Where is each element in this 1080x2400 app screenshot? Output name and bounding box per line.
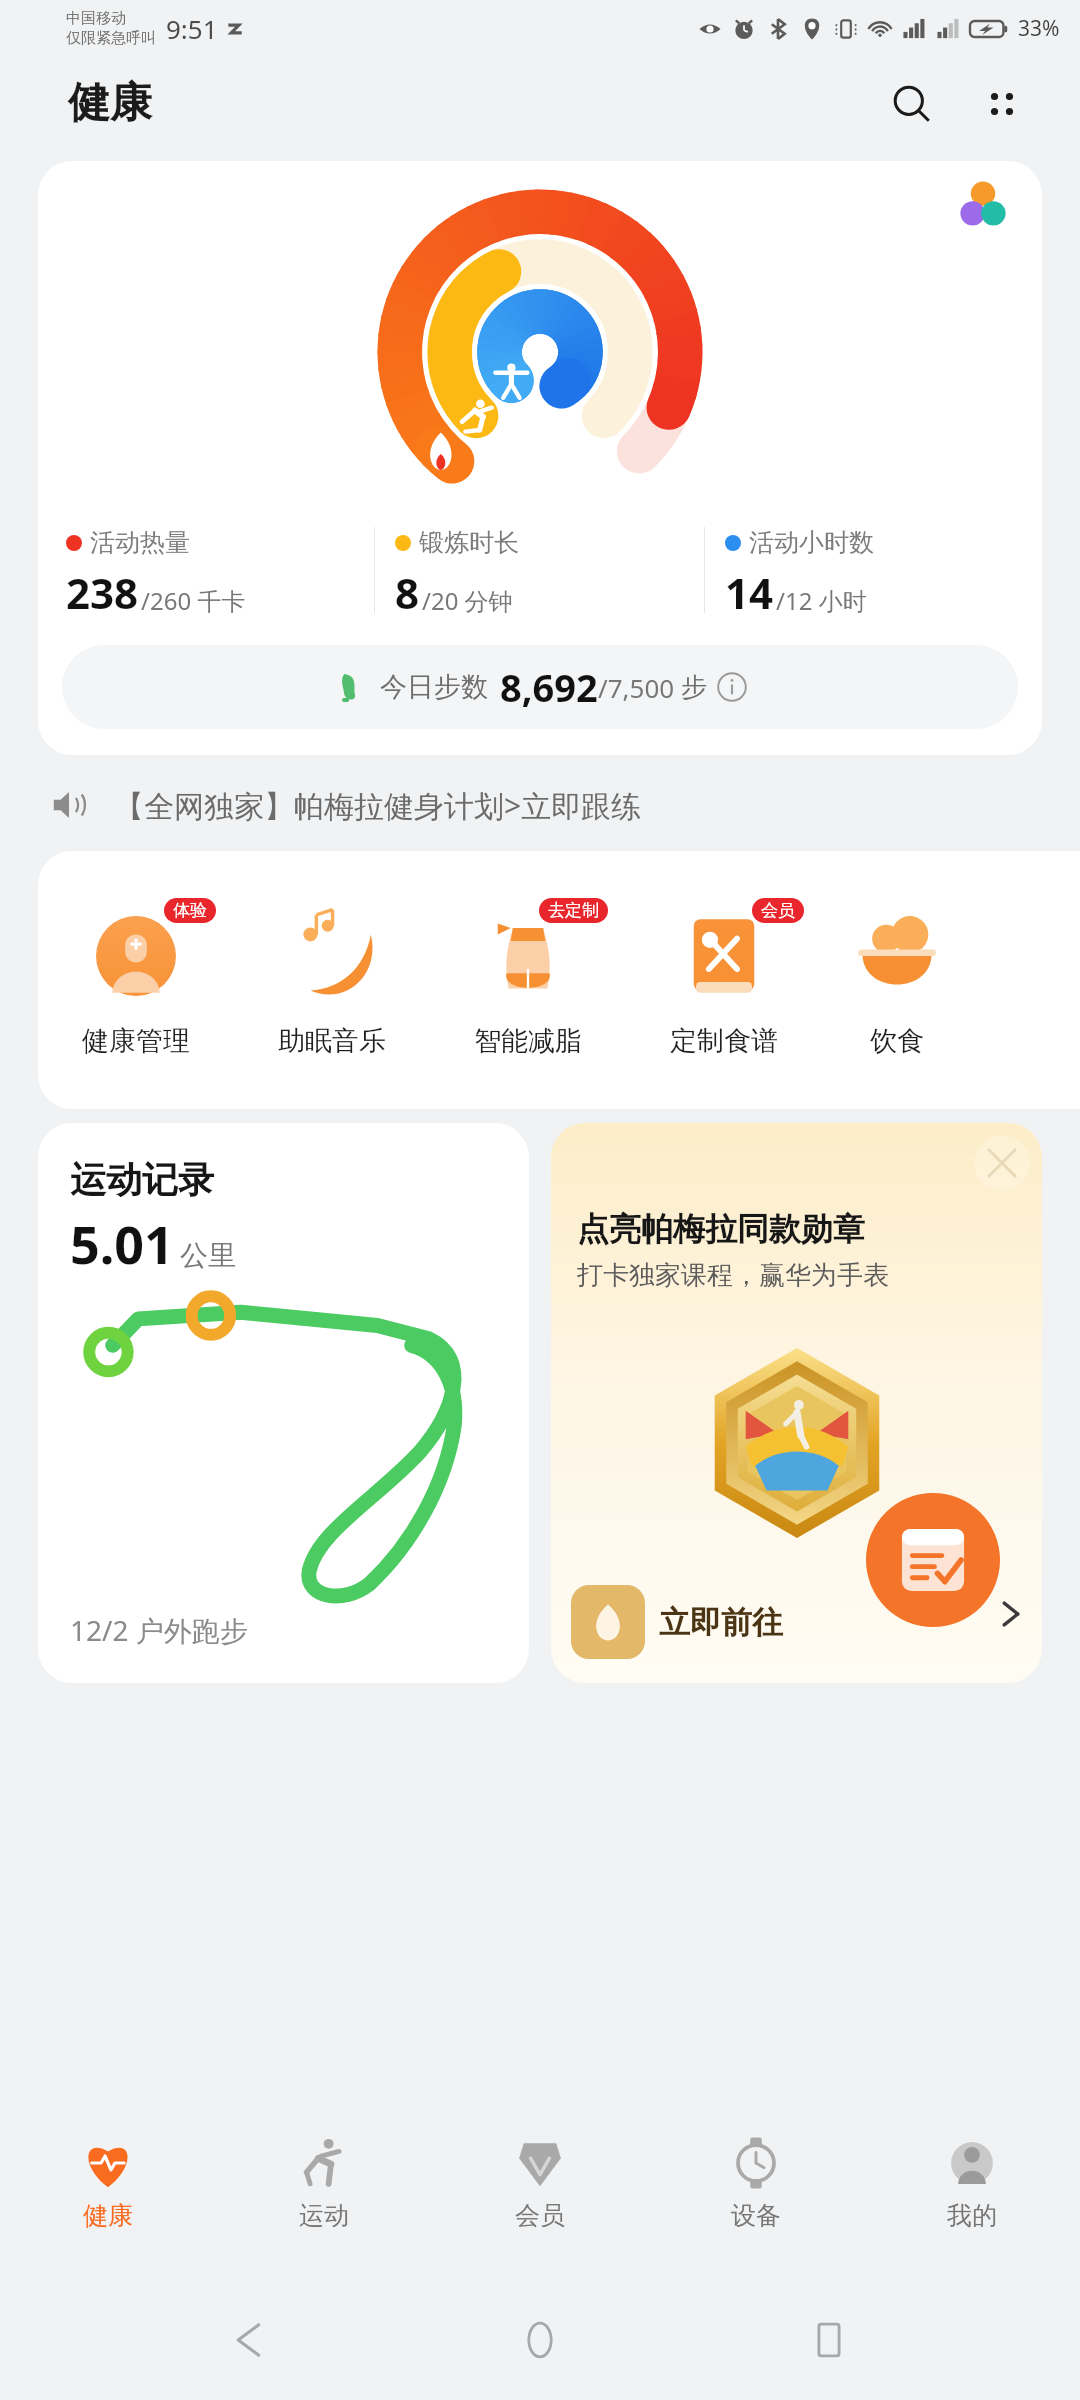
staticText: 我的 xyxy=(947,2200,997,2231)
button[interactable]: 我的 xyxy=(864,2120,1080,2280)
staticText: 中国移动 xyxy=(66,9,126,28)
staticText: 体验 xyxy=(173,900,207,921)
staticText: 公里 xyxy=(180,1238,236,1273)
button[interactable]: 活动热量 xyxy=(38,161,1042,755)
staticText: /260 千卡 xyxy=(141,584,246,617)
button[interactable]: 会员 xyxy=(432,2120,648,2280)
staticText: 活动热量 xyxy=(90,527,190,558)
button[interactable]: 饮食 xyxy=(822,851,972,1109)
button[interactable]: 健康 xyxy=(0,2120,216,2280)
staticText: 9:51 xyxy=(166,11,218,46)
staticText: 步 xyxy=(681,671,707,704)
button[interactable]: Home xyxy=(502,2302,578,2378)
button[interactable]: Check in xyxy=(866,1493,1000,1627)
staticText: 今日步数 xyxy=(380,670,488,704)
button[interactable]: 今日步数 xyxy=(62,645,1018,729)
staticText: /7,500 xyxy=(598,670,675,705)
staticText: /12 小时 xyxy=(776,584,867,617)
staticText: 5.01 xyxy=(70,1208,174,1279)
staticText: 运动记录 xyxy=(70,1157,214,1202)
button[interactable]: 体验 xyxy=(38,851,234,1109)
staticText: 助眠音乐 xyxy=(278,1024,386,1058)
staticText: 健康 xyxy=(83,2200,133,2231)
button[interactable]: 设备 xyxy=(648,2120,864,2280)
staticText: 8,692 xyxy=(500,661,598,713)
button[interactable]: 会员 xyxy=(626,851,822,1109)
button[interactable]: Profile xyxy=(924,161,1042,247)
staticText: 锻炼时长 xyxy=(419,527,519,558)
staticText: 活动小时数 xyxy=(749,527,874,558)
staticText: 健康 xyxy=(68,77,152,130)
staticText: 健康管理 xyxy=(82,1024,190,1058)
staticText: 饮食 xyxy=(870,1024,924,1058)
staticText: 去定制 xyxy=(548,900,599,921)
staticText: 12/2 户外跑步 xyxy=(70,1611,248,1649)
staticText: 会员 xyxy=(761,900,795,921)
staticText: 14 xyxy=(725,564,774,621)
staticText: 立即前往 xyxy=(659,1603,783,1642)
button[interactable]: 去定制 xyxy=(430,851,626,1109)
staticText: 仅限紧急呼叫 xyxy=(66,29,156,48)
button[interactable]: Search xyxy=(876,68,948,140)
staticText: 33% xyxy=(1018,14,1060,43)
button[interactable]: More options xyxy=(966,68,1038,140)
staticText: 238 xyxy=(66,564,139,621)
button[interactable]: 点亮帕梅拉同款勋章 xyxy=(551,1123,1042,1683)
staticText: 【全网独家】帕梅拉健身计划>立即跟练 xyxy=(114,785,642,826)
staticText: 会员 xyxy=(515,2200,565,2231)
button[interactable]: 运动 xyxy=(216,2120,432,2280)
button[interactable]: Back xyxy=(213,2302,289,2378)
button[interactable]: Close xyxy=(974,1135,1030,1191)
button[interactable]: 助眠音乐 xyxy=(234,851,430,1109)
button[interactable]: 【全网独家】帕梅拉健身计划>立即跟练 xyxy=(50,769,1030,841)
staticText: 设备 xyxy=(731,2200,781,2231)
staticText: 智能减脂 xyxy=(474,1024,582,1058)
staticText: 运动 xyxy=(299,2200,349,2231)
staticText: /20 分钟 xyxy=(422,584,513,617)
staticText: 打卡独家课程，赢华为手表 xyxy=(577,1259,889,1292)
staticText: 点亮帕梅拉同款勋章 xyxy=(577,1209,865,1249)
button[interactable]: 运动记录 xyxy=(38,1123,529,1683)
button[interactable]: Recents xyxy=(791,2302,867,2378)
staticText: 定制食谱 xyxy=(670,1024,778,1058)
staticText: 8 xyxy=(395,564,420,621)
